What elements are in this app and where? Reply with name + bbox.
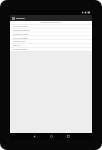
staticText: Battery saver bbox=[13, 40, 26, 43]
staticText: Settings bbox=[16, 17, 25, 20]
button[interactable]: Open navigation menu bbox=[10, 15, 16, 21]
button[interactable]: Apps & storage bbox=[10, 36, 92, 40]
staticText: General preferences bbox=[41, 21, 61, 24]
button[interactable]: System update bbox=[10, 47, 92, 51]
button[interactable]: Home bbox=[48, 133, 55, 140]
staticText: Display & sound bbox=[13, 33, 29, 36]
staticText: Security bbox=[13, 44, 21, 47]
button[interactable]: Recent apps bbox=[65, 133, 72, 140]
staticText: Bluetooth devices bbox=[13, 29, 30, 32]
staticText: Wi-Fi & network bbox=[13, 25, 28, 28]
button[interactable]: Battery saver bbox=[10, 39, 92, 43]
staticText: System update bbox=[13, 48, 27, 51]
button[interactable]: Display & sound bbox=[10, 32, 92, 36]
button[interactable]: Back bbox=[31, 133, 38, 140]
staticText: Apps & storage bbox=[13, 37, 28, 40]
button[interactable]: Security bbox=[10, 43, 92, 47]
button[interactable]: Wi-Fi & network bbox=[10, 24, 92, 28]
button[interactable]: Bluetooth devices bbox=[10, 28, 92, 32]
